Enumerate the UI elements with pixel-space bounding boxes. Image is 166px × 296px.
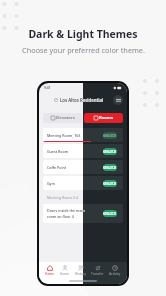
button[interactable]: Doors inside the main [43,204,123,223]
button[interactable]: History [75,265,86,276]
staticText: Home [45,272,55,276]
button[interactable]: Transfer [91,265,104,276]
staticText: Coffe Point [47,165,101,170]
button[interactable]: Activity [109,265,121,276]
button[interactable]: History [75,265,86,276]
staticText: Los Altos Residential [60,97,104,103]
staticText: Guest Room [47,149,101,154]
staticText: UNLOCK [103,182,117,186]
button[interactable]: UNLOCK [103,164,117,171]
staticText: Transfer [91,272,104,276]
staticText: UNLOCK [103,134,117,138]
staticText: Choose your preferred color theme. [22,45,145,55]
staticText: Rooms [99,115,113,121]
button[interactable]: Meeting Room, 163 [43,128,123,142]
button[interactable]: UNLOCK [103,148,117,155]
button[interactable]: Doors inside the main [43,204,123,223]
button[interactable]: Home [45,265,55,276]
staticText: Gym [47,181,101,186]
button[interactable]: Meeting Room, 163 [43,128,123,142]
staticText: Users [60,272,69,276]
staticText: Home [45,272,55,276]
button[interactable]: Gym [43,176,123,190]
staticText: Meeting Room, 163 [47,133,101,138]
staticText: UNLOCK [103,166,117,170]
staticText: Users [60,272,69,276]
button[interactable]: Elevators [43,113,82,123]
button[interactable]: Rooms [84,113,123,123]
staticText: Activity [109,272,121,276]
staticText: Elevators [56,115,75,121]
staticText: UNLOCK [103,212,117,216]
button[interactable]: Guest Room [43,144,123,158]
button[interactable]: Gym [43,176,123,190]
staticText: room on floor 4 [47,214,74,219]
staticText: Elevators [56,115,75,121]
button[interactable]: Transfer [91,265,104,276]
button[interactable]: UNLOCK [103,164,117,171]
button[interactable]: Coffe Point [43,160,123,174]
staticText: Dark & Light Themes [28,27,138,41]
staticText: Meeting Room 3-4 [47,195,79,200]
staticText: 9:41 [44,85,51,90]
button[interactable]: UNLOCK [103,180,117,187]
staticText: Gym [47,181,101,186]
staticText: Doors inside the main [47,208,85,213]
staticText: Guest Room [47,149,101,154]
button[interactable]: Menu [113,95,123,105]
staticText: Rooms [99,115,113,121]
staticText: Meeting Room, 163 [47,133,101,138]
staticText: History [75,272,86,276]
staticText: Transfer [91,272,104,276]
button[interactable]: Guest Room [43,144,123,158]
staticText: Meeting Room 3-4 [47,195,79,200]
staticText: UNLOCK [103,150,117,154]
staticText: Coffe Point [47,165,101,170]
staticText: Activity [109,272,121,276]
button[interactable]: Coffe Point [43,160,123,174]
staticText: UNLOCK [103,166,117,170]
staticText: room on floor 4 [47,214,74,219]
button[interactable]: UNLOCK [103,180,117,187]
staticText: UNLOCK [103,212,117,216]
button[interactable]: UNLOCK [103,132,117,139]
staticText: Los Altos Residential [60,97,104,103]
button[interactable]: UNLOCK [103,210,117,217]
button[interactable]: Activity [109,265,121,276]
button[interactable]: UNLOCK [103,148,117,155]
button[interactable]: Home [45,265,55,276]
staticText: Doors inside the main [47,208,85,213]
button[interactable]: UNLOCK [103,132,117,139]
button[interactable]: UNLOCK [103,210,117,217]
staticText: 9:41 [44,85,51,90]
staticText: UNLOCK [103,182,117,186]
button[interactable]: Users [60,265,69,276]
staticText: UNLOCK [103,150,117,154]
staticText: History [75,272,86,276]
staticText: UNLOCK [103,134,117,138]
button[interactable]: Menu [113,95,123,105]
button[interactable]: Rooms [84,113,123,123]
button[interactable]: Elevators [43,113,82,123]
button[interactable]: Users [60,265,69,276]
